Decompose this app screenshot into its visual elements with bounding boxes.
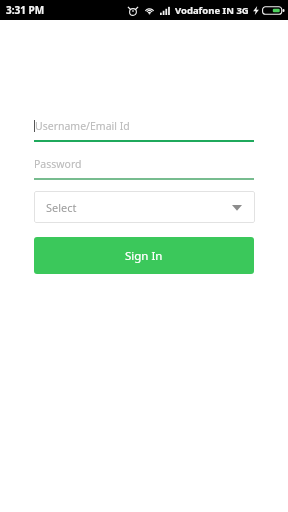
staticText: Vodafone IN 3G — [175, 4, 249, 17]
other: Alarm — [128, 6, 138, 16]
other: Battery — [262, 5, 284, 16]
other: Charging — [253, 6, 259, 15]
button[interactable]: Username/Email Id — [34, 118, 254, 142]
other: Open dropdown — [232, 204, 242, 211]
other: Signal — [160, 6, 171, 15]
staticText: Password — [34, 157, 82, 171]
other: Wi-Fi — [144, 6, 155, 15]
button[interactable]: Password — [34, 156, 254, 180]
button[interactable]: Sign In — [34, 237, 254, 274]
button[interactable]: Select — [34, 191, 255, 223]
staticText: Username/Email Id — [35, 119, 130, 133]
staticText: Select — [46, 200, 77, 215]
staticText: 3:31 PM — [6, 3, 45, 17]
staticText: Sign In — [125, 248, 163, 264]
